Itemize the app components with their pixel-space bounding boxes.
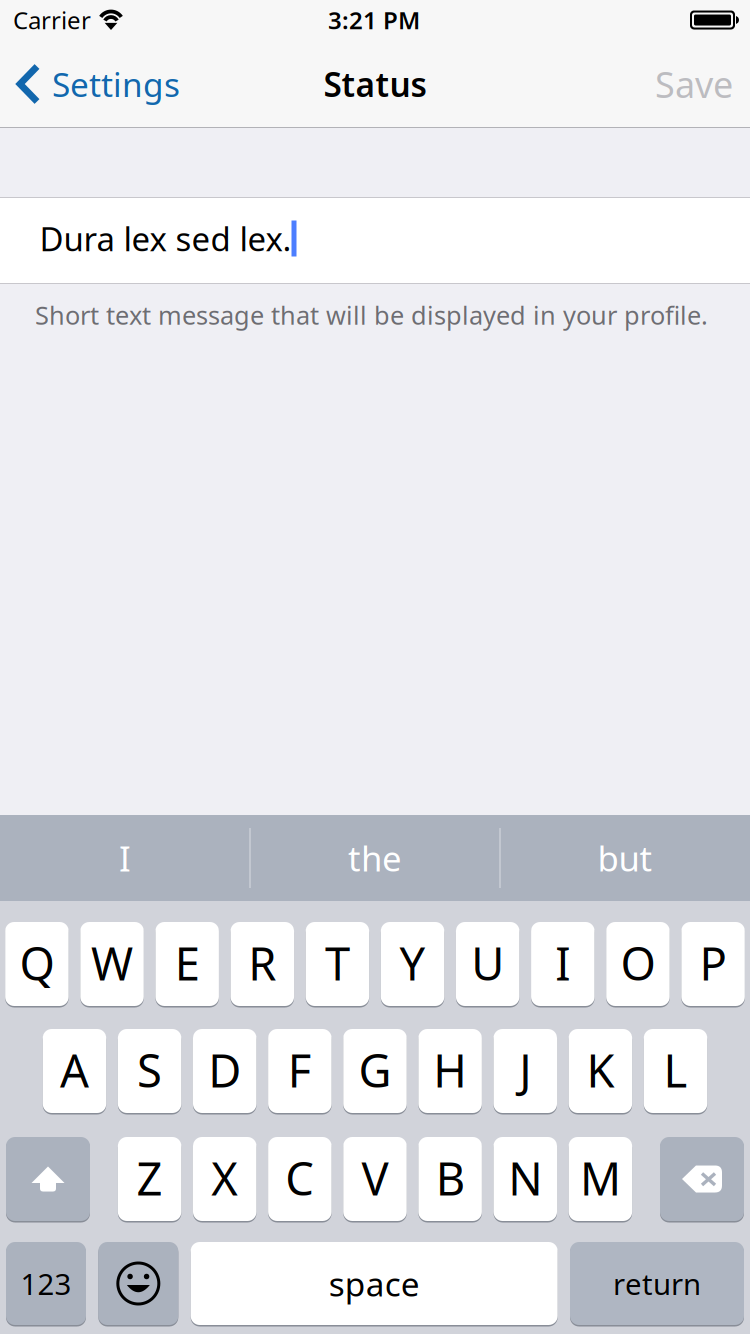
staticText: Save — [655, 60, 733, 108]
button[interactable]: T — [306, 922, 369, 1006]
button[interactable]: A — [43, 1029, 106, 1113]
staticText: D — [208, 1040, 241, 1100]
button[interactable]: Save — [638, 40, 750, 128]
staticText: but — [597, 835, 652, 881]
button[interactable]: N — [493, 1137, 557, 1221]
staticText: P — [700, 933, 727, 993]
staticText: 123 — [20, 1264, 71, 1303]
staticText: Short text message that will be displaye… — [35, 298, 708, 332]
staticText: B — [436, 1148, 465, 1208]
staticText: Dura lex sed lex. — [39, 216, 291, 261]
staticText: W — [91, 933, 133, 993]
staticText: 3:21 PM — [328, 4, 420, 36]
staticText: I — [119, 835, 131, 881]
button[interactable]: Shift — [6, 1137, 90, 1221]
button[interactable]: I — [1, 815, 249, 901]
button[interactable]: Emoji — [98, 1242, 178, 1325]
staticText: Carrier — [13, 4, 91, 36]
button[interactable]: Numbers — [6, 1242, 86, 1325]
button[interactable]: W — [80, 922, 144, 1006]
staticText: C — [285, 1148, 314, 1208]
staticText: A — [60, 1040, 89, 1100]
button[interactable]: X — [193, 1137, 256, 1221]
button[interactable]: Y — [381, 922, 444, 1006]
staticText: X — [211, 1148, 238, 1208]
staticText: H — [433, 1040, 467, 1100]
staticText: G — [358, 1040, 391, 1100]
button[interactable]: H — [418, 1029, 482, 1113]
button[interactable]: R — [231, 922, 294, 1006]
button[interactable]: Settings — [0, 40, 190, 128]
staticText: return — [613, 1264, 701, 1303]
button[interactable]: Dura lex sed lex. — [0, 198, 750, 283]
staticText: O — [620, 933, 655, 993]
staticText: Y — [400, 933, 426, 993]
staticText: space — [329, 1261, 420, 1306]
button[interactable]: U — [456, 922, 519, 1006]
button[interactable]: J — [493, 1029, 557, 1113]
staticText: J — [519, 1040, 531, 1100]
button[interactable]: but — [501, 815, 749, 901]
staticText: Status — [323, 62, 426, 106]
staticText: T — [325, 933, 350, 993]
button[interactable]: Q — [5, 922, 69, 1006]
staticText: R — [248, 933, 276, 993]
staticText: Q — [19, 933, 54, 993]
button[interactable]: C — [268, 1137, 332, 1221]
button[interactable]: B — [418, 1137, 482, 1221]
button[interactable]: O — [606, 922, 670, 1006]
staticText: E — [175, 933, 200, 993]
button[interactable]: S — [118, 1029, 181, 1113]
staticText: M — [580, 1148, 621, 1208]
button[interactable]: D — [193, 1029, 256, 1113]
staticText: N — [508, 1148, 542, 1208]
button[interactable]: L — [644, 1029, 707, 1113]
button[interactable]: space — [191, 1242, 558, 1325]
staticText: I — [555, 933, 570, 993]
button[interactable]: Delete — [660, 1137, 744, 1221]
button[interactable]: I — [531, 922, 595, 1006]
button[interactable]: F — [268, 1029, 332, 1113]
staticText: K — [586, 1040, 614, 1100]
button[interactable]: E — [155, 922, 219, 1006]
staticText: the — [348, 835, 402, 881]
button[interactable]: K — [569, 1029, 632, 1113]
button[interactable]: the — [251, 815, 499, 901]
button[interactable]: G — [343, 1029, 407, 1113]
staticText: F — [288, 1040, 312, 1100]
button[interactable]: V — [343, 1137, 407, 1221]
button[interactable]: return — [570, 1242, 744, 1325]
staticText: V — [361, 1148, 388, 1208]
staticText: Z — [137, 1148, 163, 1208]
staticText: L — [663, 1040, 687, 1100]
staticText: Settings — [52, 62, 180, 106]
staticText: U — [471, 933, 504, 993]
button[interactable]: P — [681, 922, 745, 1006]
button[interactable]: M — [569, 1137, 632, 1221]
staticText: S — [137, 1040, 162, 1100]
button[interactable]: Z — [118, 1137, 181, 1221]
